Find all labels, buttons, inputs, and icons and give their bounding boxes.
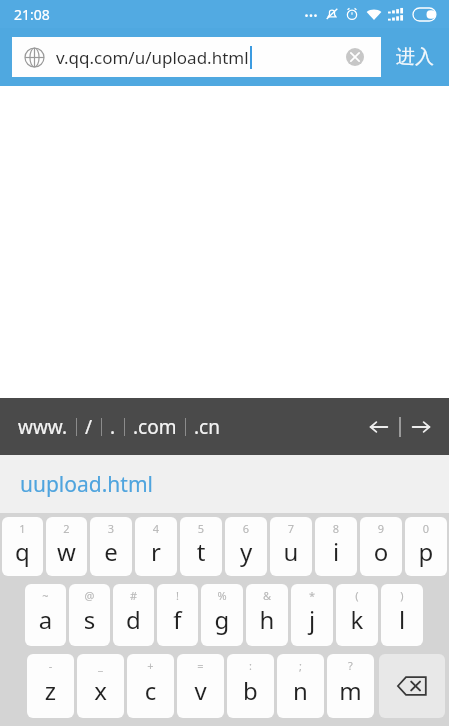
staticText: *: [291, 588, 333, 603]
staticText: /: [85, 414, 93, 440]
button[interactable]: 5: [180, 517, 222, 576]
button[interactable]: 进入: [381, 28, 449, 86]
button[interactable]: _: [77, 654, 124, 718]
staticText: f: [157, 603, 198, 636]
button[interactable]: @: [69, 584, 110, 646]
staticText: 2: [46, 521, 87, 536]
staticText: @: [69, 588, 110, 603]
button[interactable]: uupload.html: [0, 455, 449, 513]
staticText: s: [69, 603, 110, 636]
staticText: y: [225, 535, 267, 568]
button[interactable]: v.qq.com/u/upload.html: [12, 37, 381, 77]
staticText: +: [127, 658, 174, 673]
staticText: &: [246, 588, 288, 603]
staticText: l: [381, 603, 423, 636]
staticText: 4: [135, 521, 177, 536]
button[interactable]: +: [127, 654, 174, 718]
button[interactable]: 8: [315, 517, 357, 576]
staticText: o: [360, 535, 402, 568]
staticText: .: [110, 414, 116, 440]
button[interactable]: Previous: [359, 407, 399, 447]
staticText: i: [315, 535, 357, 568]
button[interactable]: 7: [270, 517, 312, 576]
staticText: t: [180, 535, 222, 568]
staticText: h: [246, 603, 288, 636]
staticText: 1: [2, 521, 43, 536]
button[interactable]: !: [157, 584, 198, 646]
staticText: =: [177, 658, 224, 673]
staticText: _: [77, 658, 124, 673]
button[interactable]: &: [246, 584, 288, 646]
staticText: m: [327, 674, 374, 707]
staticText: 0: [405, 521, 447, 536]
staticText: a: [25, 603, 66, 636]
staticText: q: [2, 535, 43, 568]
button[interactable]: -: [27, 654, 74, 718]
button[interactable]: .: [102, 398, 124, 455]
button[interactable]: www.: [10, 398, 76, 455]
button[interactable]: 0: [405, 517, 447, 576]
button[interactable]: (: [336, 584, 378, 646]
staticText: -: [27, 658, 74, 673]
button[interactable]: 4: [135, 517, 177, 576]
button[interactable]: Backspace: [379, 654, 445, 718]
staticText: v: [177, 674, 224, 707]
staticText: j: [291, 603, 333, 636]
staticText: ~: [25, 588, 66, 603]
button[interactable]: /: [77, 398, 101, 455]
staticText: :: [227, 658, 274, 673]
staticText: 6: [225, 521, 267, 536]
staticText: b: [227, 674, 274, 707]
staticText: r: [135, 535, 177, 568]
button[interactable]: :: [227, 654, 274, 718]
staticText: u: [270, 535, 312, 568]
staticText: 9: [360, 521, 402, 536]
staticText: e: [90, 535, 132, 568]
button[interactable]: 3: [90, 517, 132, 576]
staticText: 21:08: [14, 5, 50, 24]
button[interactable]: .cn: [186, 398, 228, 455]
staticText: 5: [180, 521, 222, 536]
button[interactable]: %: [201, 584, 243, 646]
button[interactable]: 2: [46, 517, 87, 576]
staticText: %: [201, 588, 243, 603]
staticText: p: [405, 535, 447, 568]
staticText: 3: [90, 521, 132, 536]
staticText: x: [77, 674, 124, 707]
button[interactable]: ?: [327, 654, 374, 718]
button[interactable]: ~: [25, 584, 66, 646]
button[interactable]: *: [291, 584, 333, 646]
staticText: d: [113, 603, 154, 636]
staticText: w: [46, 535, 87, 568]
staticText: .com: [133, 414, 177, 440]
button[interactable]: ): [381, 584, 423, 646]
staticText: #: [113, 588, 154, 603]
staticText: n: [277, 674, 324, 707]
staticText: .cn: [194, 414, 220, 440]
staticText: ): [381, 588, 423, 603]
button[interactable]: Next: [401, 407, 441, 447]
staticText: 进入: [396, 45, 434, 69]
staticText: v.qq.com/u/upload.html: [56, 46, 249, 69]
staticText: !: [157, 588, 198, 603]
button[interactable]: 6: [225, 517, 267, 576]
button[interactable]: #: [113, 584, 154, 646]
staticText: g: [201, 603, 243, 636]
staticText: k: [336, 603, 378, 636]
staticText: c: [127, 674, 174, 707]
button[interactable]: ;: [277, 654, 324, 718]
staticText: ;: [277, 658, 324, 673]
staticText: uupload.html: [20, 470, 153, 499]
button[interactable]: 9: [360, 517, 402, 576]
staticText: 7: [270, 521, 312, 536]
staticText: (: [336, 588, 378, 603]
staticText: z: [27, 674, 74, 707]
staticText: www.: [18, 414, 68, 440]
button[interactable]: .com: [125, 398, 185, 455]
button[interactable]: Clear: [342, 44, 368, 70]
button[interactable]: =: [177, 654, 224, 718]
staticText: ?: [327, 658, 374, 673]
button[interactable]: 1: [2, 517, 43, 576]
staticText: 8: [315, 521, 357, 536]
